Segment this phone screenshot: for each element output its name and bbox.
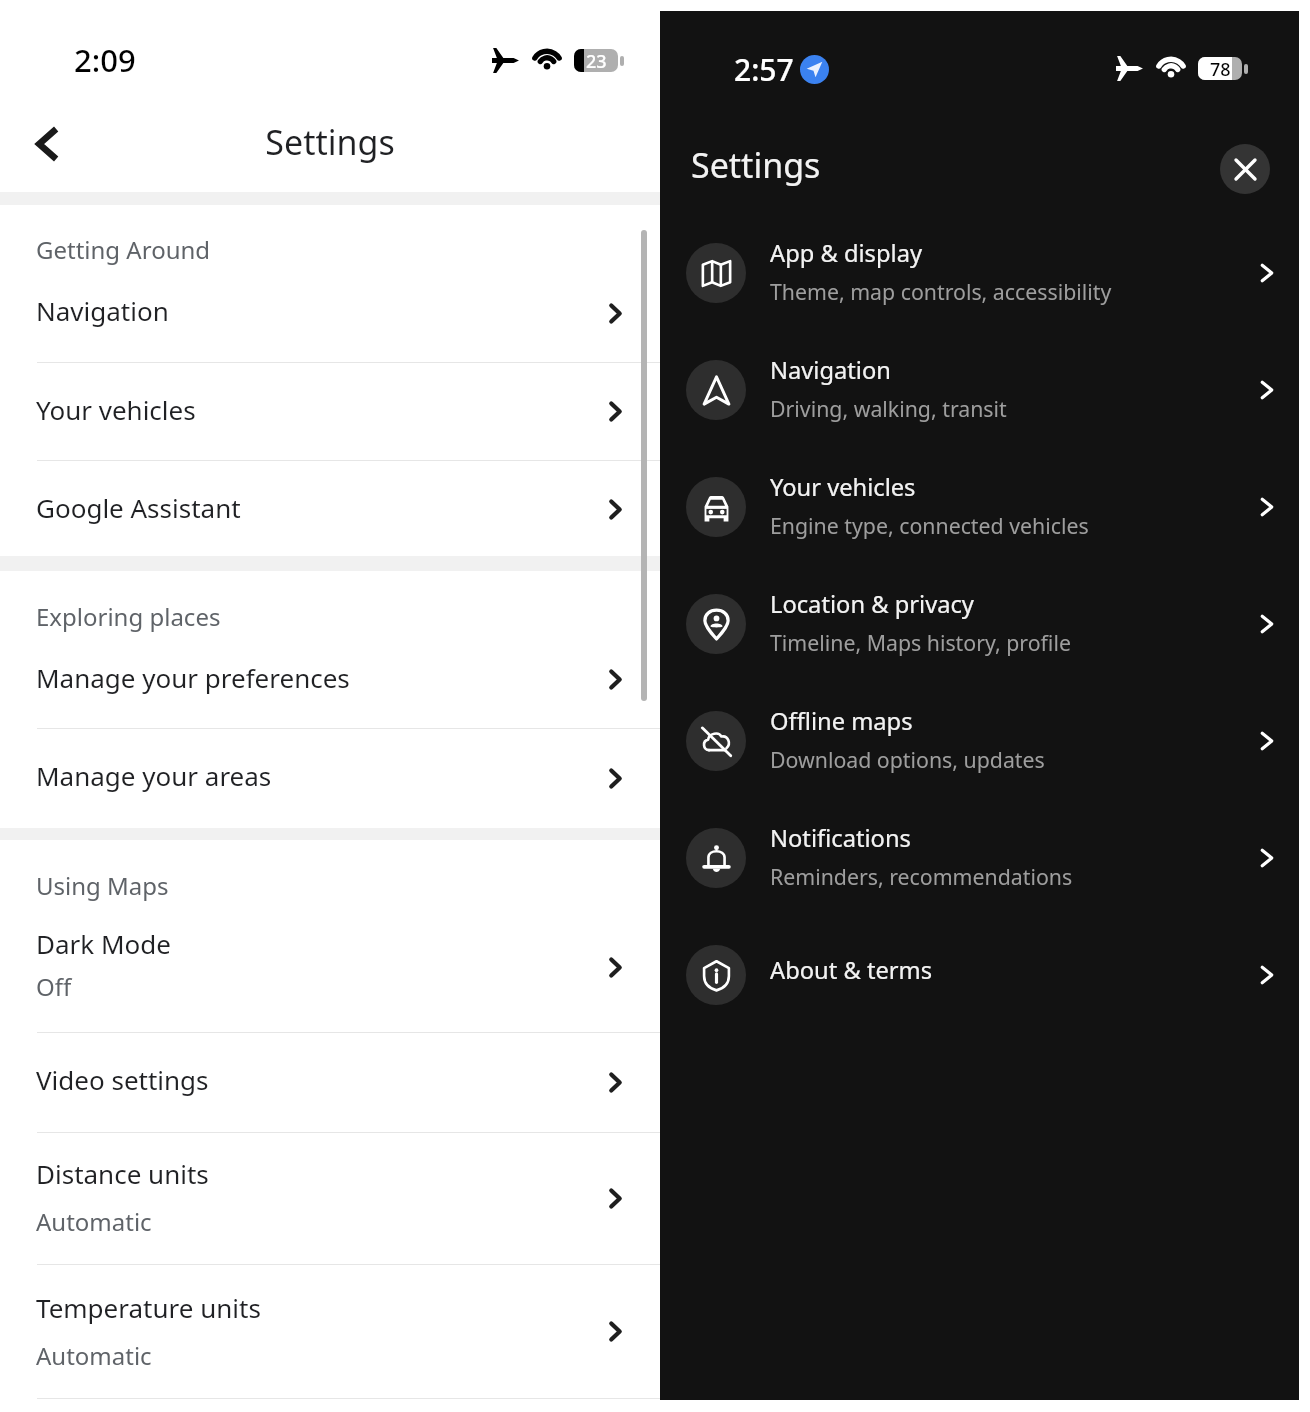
staticText: Off [36, 970, 72, 1003]
staticText: Your vehicles [36, 392, 196, 427]
button[interactable]: Manage your areas [0, 729, 660, 828]
staticText: Settings [0, 119, 660, 165]
staticText: Offline maps [770, 705, 913, 737]
button[interactable]: Dark Mode [0, 897, 660, 1032]
button[interactable]: Temperature units [0, 1265, 660, 1398]
button[interactable]: Google Assistant [0, 461, 660, 556]
button[interactable]: Back [14, 110, 82, 178]
button[interactable]: Video settings [0, 1033, 660, 1132]
staticText: Distance units [36, 1156, 209, 1191]
staticText: Manage your preferences [36, 660, 350, 695]
staticText: Manage your areas [36, 758, 272, 793]
staticText: Getting Around [36, 233, 211, 266]
staticText: Video settings [36, 1062, 209, 1097]
staticText: 2:09 [74, 39, 136, 81]
button[interactable]: About & terms [660, 916, 1299, 1033]
button[interactable]: Notifications [660, 799, 1299, 916]
button[interactable]: Location & privacy [660, 565, 1299, 682]
staticText: Download options, updates [770, 745, 1045, 774]
staticText: Exploring places [36, 600, 221, 633]
staticText: Notifications [770, 822, 911, 854]
staticText: Automatic [36, 1339, 152, 1372]
staticText: 23 [586, 49, 607, 72]
staticText: Timeline, Maps history, profile [770, 628, 1071, 657]
staticText: Google Assistant [36, 490, 241, 525]
staticText: Your vehicles [770, 471, 916, 503]
staticText: 2:57 [734, 49, 794, 90]
staticText: Using Maps [36, 869, 169, 902]
staticText: Reminders, recommendations [770, 862, 1073, 891]
button[interactable]: Offline maps [660, 682, 1299, 799]
button[interactable]: Close [1220, 144, 1270, 194]
button[interactable]: Distance units [0, 1133, 660, 1264]
staticText: 78 [1210, 57, 1231, 80]
staticText: Driving, walking, transit [770, 394, 1007, 423]
staticText: Theme, map controls, accessibility [770, 277, 1112, 306]
button[interactable]: Navigation [660, 331, 1299, 448]
staticText: About & terms [770, 954, 933, 986]
button[interactable]: App & display [660, 214, 1299, 331]
staticText: Settings [691, 142, 821, 188]
staticText: Engine type, connected vehicles [770, 511, 1089, 540]
button[interactable]: Navigation [0, 264, 660, 362]
staticText: Navigation [770, 354, 891, 386]
staticText: Temperature units [36, 1290, 261, 1325]
staticText: Location & privacy [770, 588, 974, 620]
button[interactable]: Your vehicles [660, 448, 1299, 565]
button[interactable]: Manage your preferences [0, 630, 660, 728]
staticText: Dark Mode [36, 926, 171, 961]
staticText: Navigation [36, 293, 169, 328]
button[interactable]: Your vehicles [0, 363, 660, 460]
staticText: Automatic [36, 1205, 152, 1238]
staticText: App & display [770, 237, 923, 269]
